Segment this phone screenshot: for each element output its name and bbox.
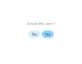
- staticText: No: [32, 32, 37, 37]
- staticText: Yes: [45, 32, 51, 37]
- button[interactable]: No: [28, 30, 40, 38]
- button[interactable]: Yes: [42, 30, 54, 38]
- staticText: Delete this item?: [26, 21, 55, 26]
